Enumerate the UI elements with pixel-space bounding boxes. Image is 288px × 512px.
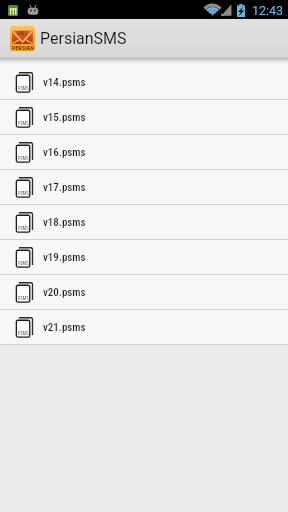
button[interactable]: PSMS <box>0 205 288 240</box>
staticText: v14.psms <box>43 76 86 89</box>
staticText: PSMS <box>18 191 29 196</box>
button[interactable]: PSMS <box>0 240 288 275</box>
staticText: v16.psms <box>43 146 86 159</box>
staticText: v19.psms <box>43 251 86 264</box>
button[interactable]: PSMS <box>0 275 288 310</box>
button[interactable]: PSMS <box>0 135 288 170</box>
button[interactable]: PSMS <box>0 100 288 135</box>
staticText: PSMS <box>18 226 29 231</box>
button[interactable]: PSMS <box>0 310 288 345</box>
staticText: PSMS <box>18 331 29 336</box>
staticText: v15.psms <box>43 111 86 124</box>
staticText: v17.psms <box>43 181 86 194</box>
staticText: PSMS <box>18 296 29 301</box>
staticText: PSMS <box>18 121 29 126</box>
staticText: v21.psms <box>43 321 86 334</box>
staticText: v18.psms <box>43 216 86 229</box>
staticText: v20.psms <box>43 286 86 299</box>
staticText: PSMS <box>18 86 29 91</box>
staticText: PSMS <box>18 156 29 161</box>
staticText: 12:43 <box>252 3 284 18</box>
button[interactable]: PSMS <box>0 170 288 205</box>
staticText: PERSIAN <box>12 44 34 51</box>
staticText: SMS <box>17 30 28 36</box>
staticText: PSMS <box>18 261 29 266</box>
staticText: PersianSMS <box>40 29 127 48</box>
button[interactable]: PSMS <box>0 65 288 100</box>
